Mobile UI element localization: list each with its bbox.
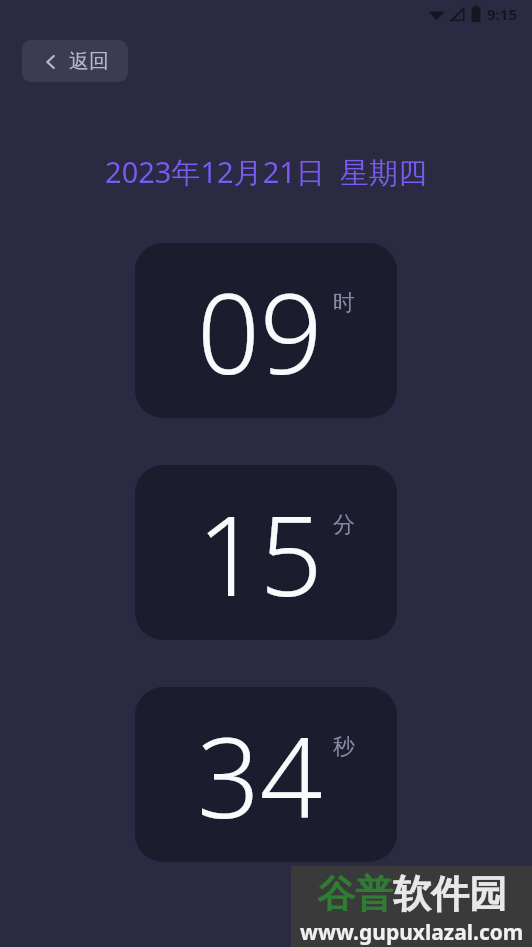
staticText: 9:15 bbox=[487, 4, 517, 24]
button[interactable]: 09 bbox=[135, 243, 397, 418]
staticText: 返回 bbox=[69, 49, 109, 74]
staticText: 谷普 bbox=[317, 870, 393, 918]
staticText: 15 bbox=[197, 478, 323, 628]
staticText: 2023年12月21日 星期四 bbox=[105, 152, 427, 192]
staticText: 时 bbox=[333, 289, 355, 317]
staticText: 分 bbox=[333, 511, 355, 539]
staticText: 34 bbox=[197, 700, 323, 850]
staticText: 09 bbox=[197, 256, 323, 406]
staticText: 秒 bbox=[333, 733, 355, 761]
button[interactable]: 34 bbox=[135, 687, 397, 862]
button[interactable]: 返回 bbox=[22, 40, 128, 82]
staticText: www.gupuxlazal.com bbox=[300, 918, 524, 947]
staticText: 软件园 bbox=[393, 870, 507, 918]
button[interactable]: 15 bbox=[135, 465, 397, 640]
